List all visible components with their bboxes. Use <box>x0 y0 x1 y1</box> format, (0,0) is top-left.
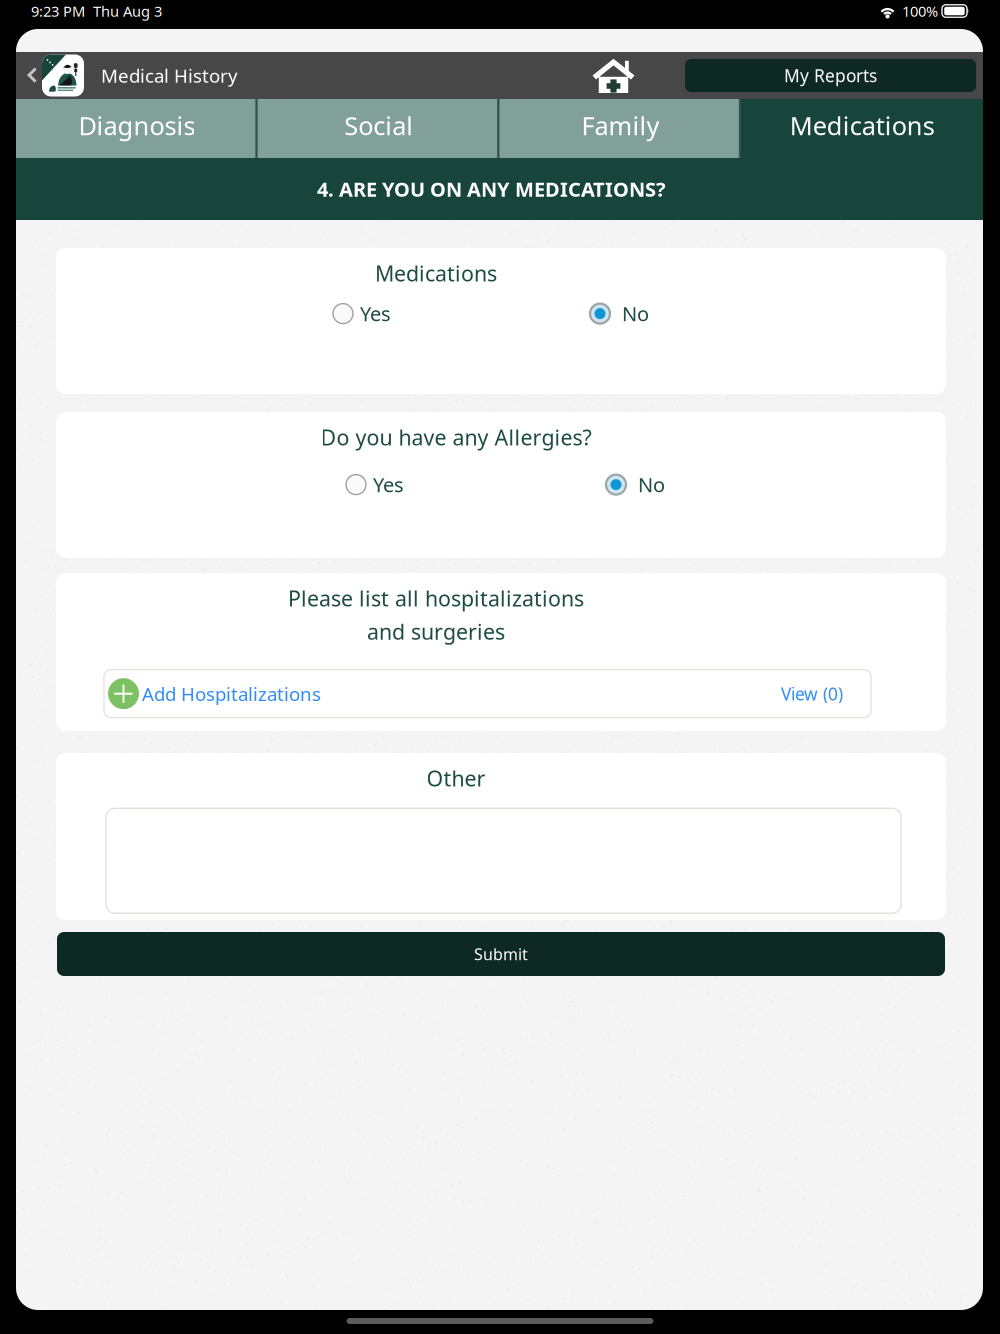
staticText: Medical History <box>101 63 238 88</box>
button[interactable]: No <box>590 300 649 327</box>
staticText: Submit <box>474 943 528 965</box>
button[interactable]: Diagnosis <box>16 99 258 158</box>
button[interactable]: Yes <box>346 471 404 498</box>
staticText: No <box>622 300 649 327</box>
staticText: 4. ARE YOU ON ANY MEDICATIONS? <box>317 176 666 202</box>
staticText: and surgeries <box>367 617 505 646</box>
staticText: My Reports <box>784 64 877 87</box>
button[interactable]: Add Hospitalizations <box>104 670 871 718</box>
button[interactable]: Submit <box>16 932 983 976</box>
button[interactable]: Social <box>258 99 500 158</box>
button[interactable]: Medications <box>741 99 983 158</box>
button[interactable]: Yes <box>333 300 391 327</box>
staticText: Yes <box>373 471 404 498</box>
button[interactable]: Home <box>592 58 635 93</box>
staticText: Family <box>581 109 659 142</box>
staticText: Other <box>426 764 485 792</box>
staticText: Thu Aug 3 <box>93 1 162 21</box>
staticText: Add Hospitalizations <box>142 681 321 706</box>
staticText: 100% <box>902 1 938 21</box>
staticText: No <box>638 471 665 498</box>
staticText: Please list all hospitalizations <box>288 584 584 612</box>
button[interactable]: Family <box>499 99 741 158</box>
button[interactable]: Back <box>20 52 42 99</box>
button[interactable]: My Reports <box>685 59 976 92</box>
staticText: Medications <box>790 109 935 142</box>
staticText: Do you have any Allergies? <box>320 423 591 451</box>
staticText: Social <box>344 109 413 142</box>
staticText: Yes <box>360 300 391 327</box>
staticText: View (0) <box>781 682 843 705</box>
staticText: Medications <box>375 259 497 287</box>
staticText: Diagnosis <box>78 109 195 142</box>
staticText: 9:23 PM <box>31 1 85 21</box>
button[interactable]: No <box>606 471 665 498</box>
